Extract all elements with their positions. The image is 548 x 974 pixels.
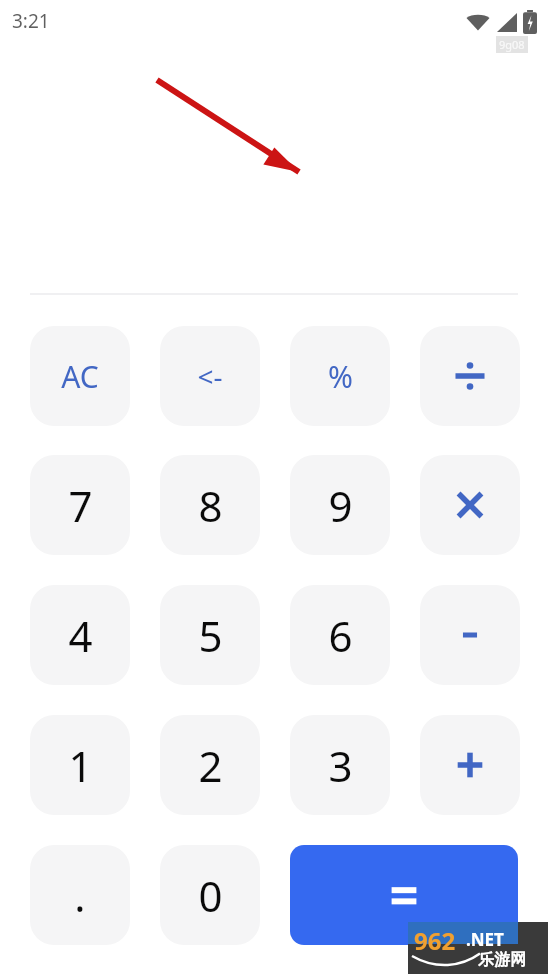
staticText: 3:21	[12, 8, 50, 34]
button[interactable]: 1	[30, 715, 130, 815]
button[interactable]: Equals	[290, 845, 518, 945]
staticText: .NET	[466, 928, 504, 951]
staticText: AC	[61, 356, 99, 397]
staticText: 962	[414, 924, 456, 957]
button[interactable]: Divide	[420, 326, 520, 426]
staticText: 3	[328, 737, 353, 794]
staticText: 8	[198, 477, 223, 534]
staticText: 5	[198, 607, 223, 664]
button[interactable]: 3	[290, 715, 390, 815]
button[interactable]: Plus	[420, 715, 520, 815]
button[interactable]: %	[290, 326, 390, 426]
staticText: 乐游网	[478, 950, 526, 970]
staticText: 4	[68, 607, 93, 664]
button[interactable]: 2	[160, 715, 260, 815]
staticText: 9	[328, 477, 353, 534]
staticText: 9g08	[499, 37, 525, 52]
staticText: %	[328, 356, 353, 397]
staticText: 1	[68, 737, 93, 794]
button[interactable]: <-	[160, 326, 260, 426]
staticText: .	[74, 867, 86, 924]
button[interactable]: AC	[30, 326, 130, 426]
button[interactable]: Minus	[420, 585, 520, 685]
button[interactable]: 5	[160, 585, 260, 685]
button[interactable]: 0	[160, 845, 260, 945]
staticText: 7	[68, 477, 93, 534]
staticText: 0	[198, 867, 223, 924]
staticText: <-	[197, 357, 223, 395]
staticText: 6	[328, 607, 353, 664]
button[interactable]: 7	[30, 455, 130, 555]
button[interactable]: Multiply	[420, 455, 520, 555]
button[interactable]: .	[30, 845, 130, 945]
button[interactable]: 4	[30, 585, 130, 685]
button[interactable]: 6	[290, 585, 390, 685]
button[interactable]: 9	[290, 455, 390, 555]
staticText: 2	[198, 737, 223, 794]
button[interactable]: 8	[160, 455, 260, 555]
